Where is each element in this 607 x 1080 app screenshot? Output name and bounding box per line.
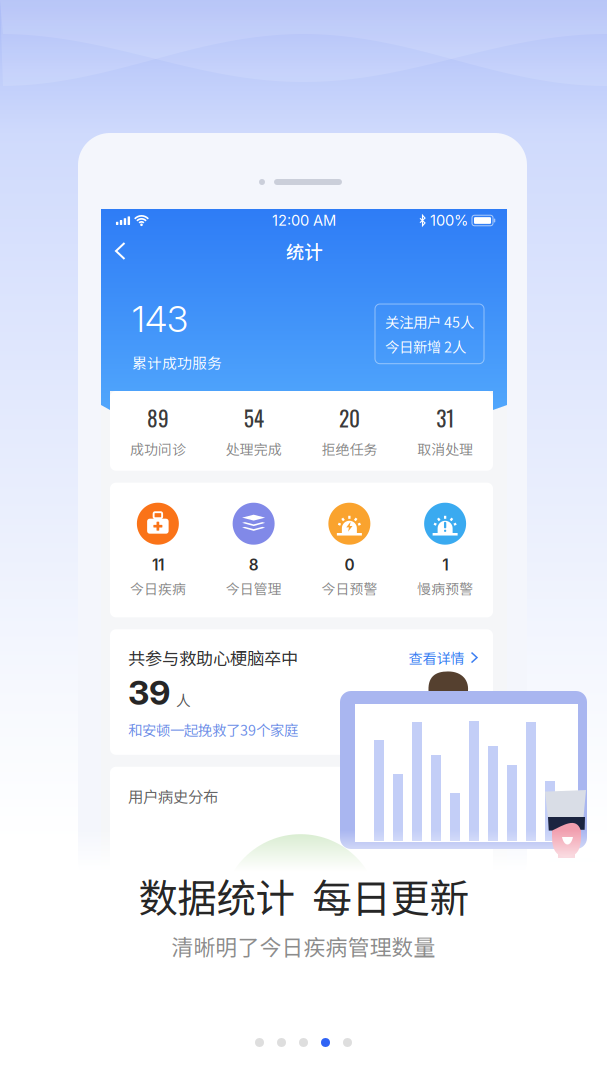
staticText: 用户病史分布 [128,785,218,807]
staticText: 今日疾病 [130,578,186,598]
staticText: 共参与救助心梗脑卒中 [128,645,298,670]
staticText: 今日管理 [226,578,282,598]
button[interactable]: 11 [110,503,206,598]
staticText: 查看详情 [408,647,464,668]
staticText: 1 [442,556,448,574]
staticText: 和安顿一起挽救了39个家庭 [128,719,298,740]
staticText: 54% [278,880,322,904]
staticText: 数据统计 每日更新 [138,867,468,924]
staticText: 今日新增 2人 [385,336,466,357]
staticText: 0 [344,556,354,574]
button[interactable]: 0 [301,503,397,598]
staticText: 143 [132,297,188,341]
button[interactable]: 20 [301,402,397,459]
staticText: 累计成功服务 [132,352,222,373]
staticText: 统计 [286,238,322,264]
button[interactable]: 54 [206,402,302,459]
button[interactable]: 89 [110,402,206,459]
staticText: 今日预警 [321,578,377,598]
staticText: 成功问诊 [130,439,186,459]
staticText: 拒绝任务 [321,439,377,459]
staticText: 关注用户 45人 [385,311,474,332]
staticText: 处理完成 [226,439,282,459]
button[interactable]: 查看详情 [408,644,477,671]
staticText: 100% [430,212,468,229]
staticText: 清晰明了今日疾病管理数量 [171,930,435,962]
staticText: 取消处理 [417,439,473,459]
staticText: 89 [147,402,169,434]
button[interactable]: 31 [397,402,493,459]
staticText: 11 [152,556,164,574]
staticText: 54 [244,402,264,434]
staticText: 人 [176,689,191,710]
button[interactable]: 8 [206,503,302,598]
button[interactable]: 1 [397,503,493,598]
button[interactable]: Back [101,234,137,268]
staticText: 8 [249,556,259,574]
staticText: 39 [128,672,170,713]
staticText: 20 [339,402,360,434]
staticText: 12:00 AM [272,212,336,229]
staticText: 31 [436,402,454,434]
staticText: 慢病预警 [417,578,473,598]
